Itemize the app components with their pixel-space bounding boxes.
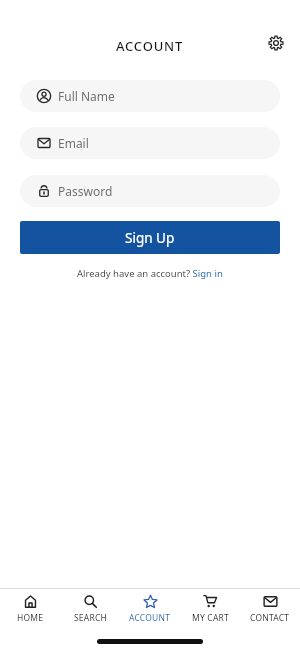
button[interactable]: ACCOUNT xyxy=(120,589,180,635)
button[interactable]: HOME xyxy=(0,589,60,635)
staticText: MY CART xyxy=(192,612,229,624)
staticText: ACCOUNT xyxy=(116,37,184,55)
button[interactable]: MY CART xyxy=(180,589,240,635)
button[interactable] xyxy=(267,34,285,52)
button[interactable]: CONTACT xyxy=(240,589,300,635)
staticText: Email xyxy=(58,135,89,151)
staticText: Password xyxy=(58,183,113,199)
button[interactable]: Sign Up xyxy=(20,221,280,254)
staticText: CONTACT xyxy=(250,612,290,624)
staticText: Sign Up xyxy=(125,229,175,247)
button[interactable]: Already have an account? Sign in xyxy=(77,267,223,280)
button[interactable]: Email xyxy=(20,127,280,159)
button[interactable]: Full Name xyxy=(20,80,280,112)
staticText: HOME xyxy=(17,612,44,624)
button[interactable]: SEARCH xyxy=(60,589,120,635)
staticText: ACCOUNT xyxy=(129,612,171,624)
staticText: SEARCH xyxy=(74,612,107,624)
button[interactable]: Password xyxy=(20,175,280,207)
staticText: Full Name xyxy=(58,88,115,104)
